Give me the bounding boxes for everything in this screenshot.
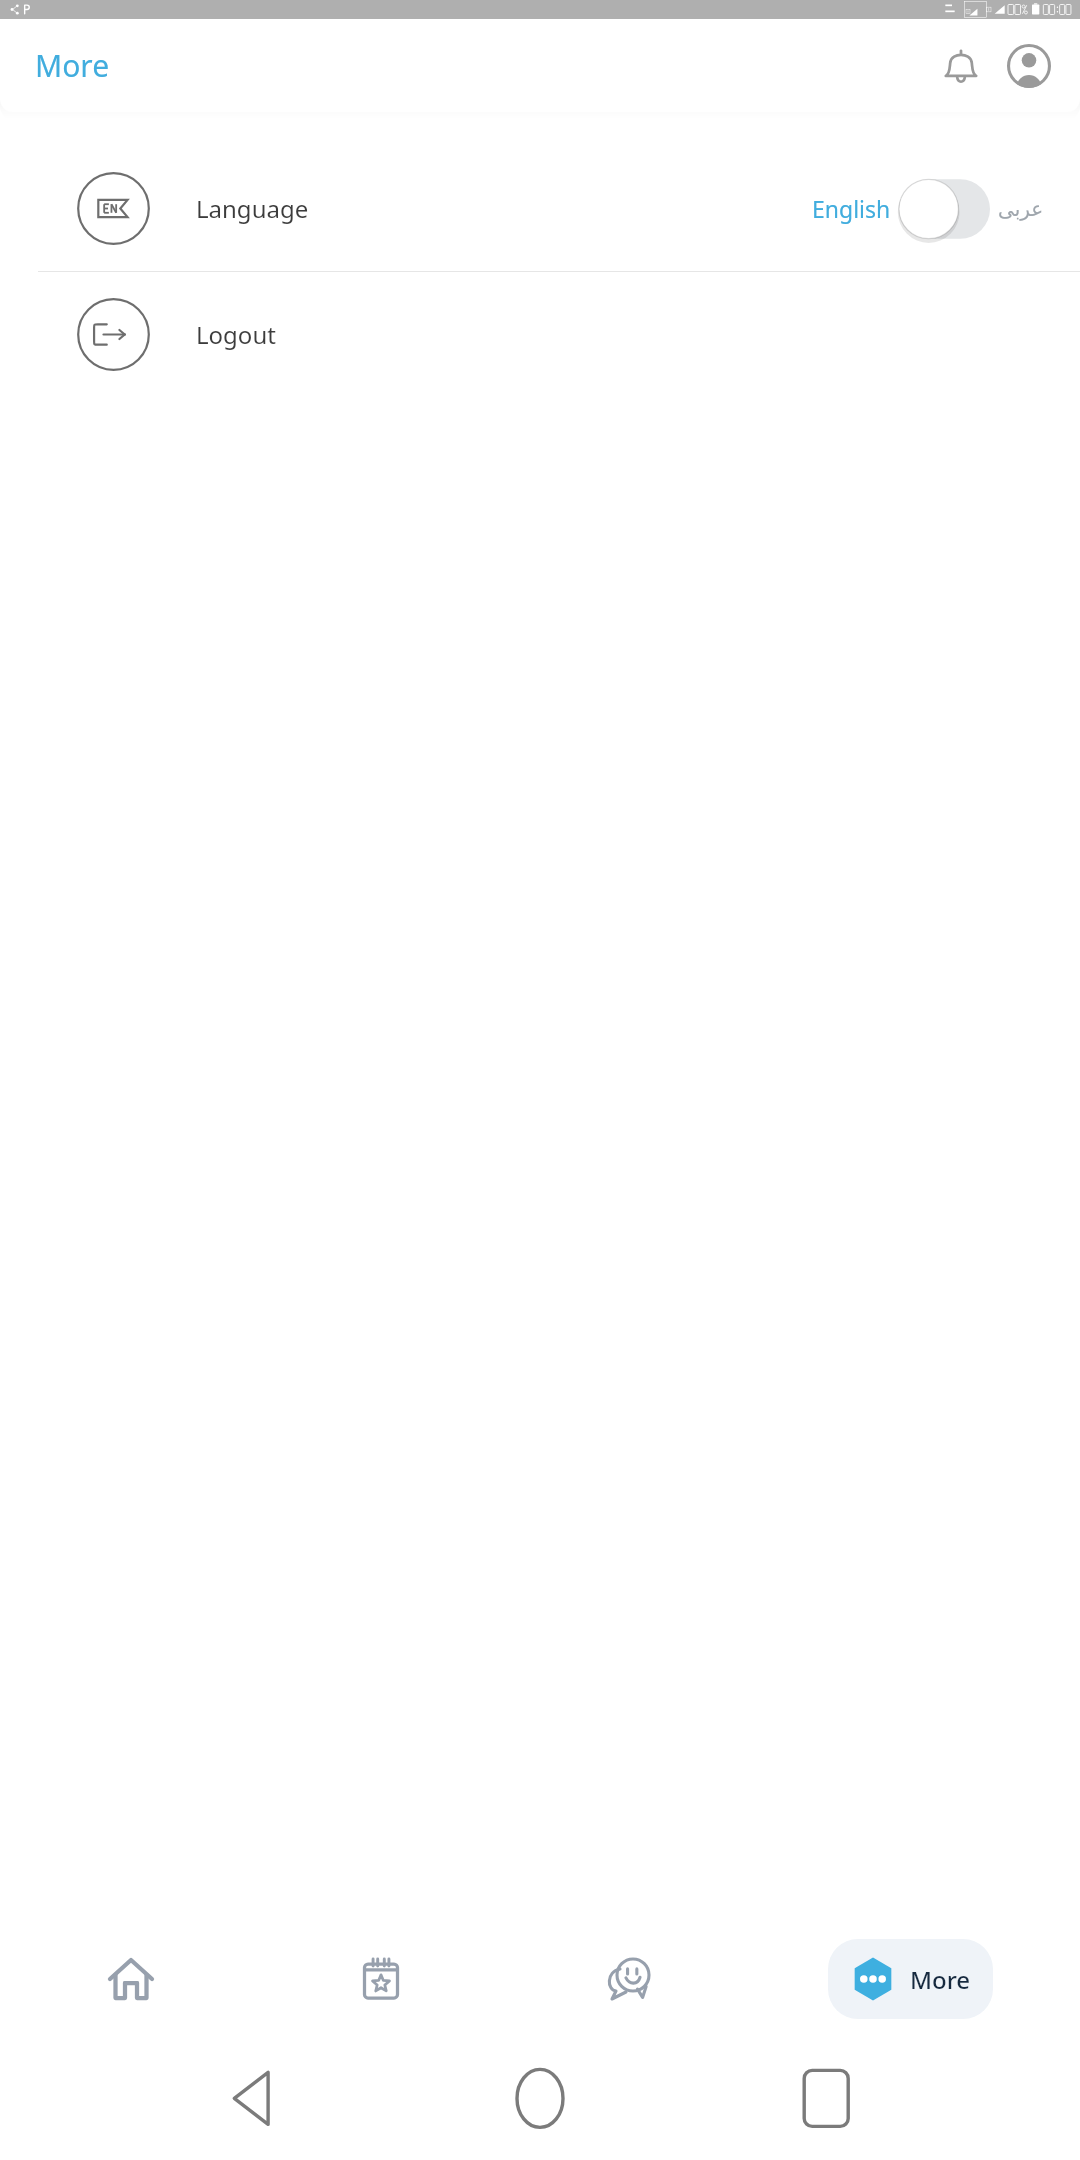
- button[interactable]: Home: [89, 1937, 173, 2021]
- staticText: عربى: [998, 197, 1044, 220]
- staticText: Language: [196, 192, 309, 225]
- staticText: English: [812, 193, 891, 224]
- button[interactable]: Notifications: [932, 37, 990, 95]
- button[interactable]: [899, 179, 990, 239]
- staticText: More: [35, 45, 110, 86]
- button[interactable]: Language: [0, 146, 1080, 271]
- staticText: Logout: [196, 318, 276, 351]
- button[interactable]: Chat: [588, 1937, 672, 2021]
- button[interactable]: Events: [339, 1937, 423, 2021]
- button[interactable]: More: [828, 1939, 993, 2019]
- button[interactable]: Profile: [1000, 37, 1058, 95]
- button[interactable]: Logout: [0, 272, 1080, 397]
- staticText: More: [910, 1963, 971, 1996]
